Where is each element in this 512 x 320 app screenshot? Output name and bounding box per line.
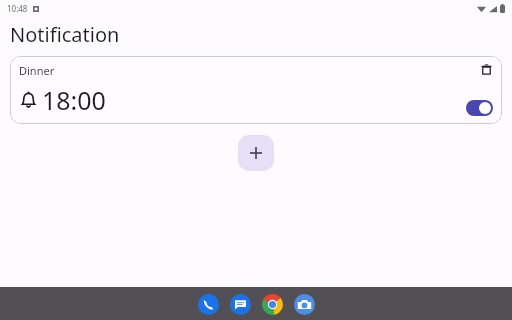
- staticText: Dinner: [19, 63, 55, 78]
- staticText: 10:48: [7, 3, 28, 14]
- button[interactable]: Dinner: [10, 56, 502, 124]
- button[interactable]: Chrome: [261, 293, 283, 315]
- staticText: Notification: [10, 21, 120, 48]
- button[interactable]: Add alarm: [238, 135, 274, 171]
- button[interactable]: Phone: [197, 293, 219, 315]
- button[interactable]: Camera: [293, 293, 315, 315]
- button[interactable]: Toggle alarm: [466, 100, 493, 116]
- button[interactable]: Delete alarm: [477, 60, 495, 78]
- button[interactable]: Messages: [229, 293, 251, 315]
- staticText: 18:00: [42, 83, 106, 117]
